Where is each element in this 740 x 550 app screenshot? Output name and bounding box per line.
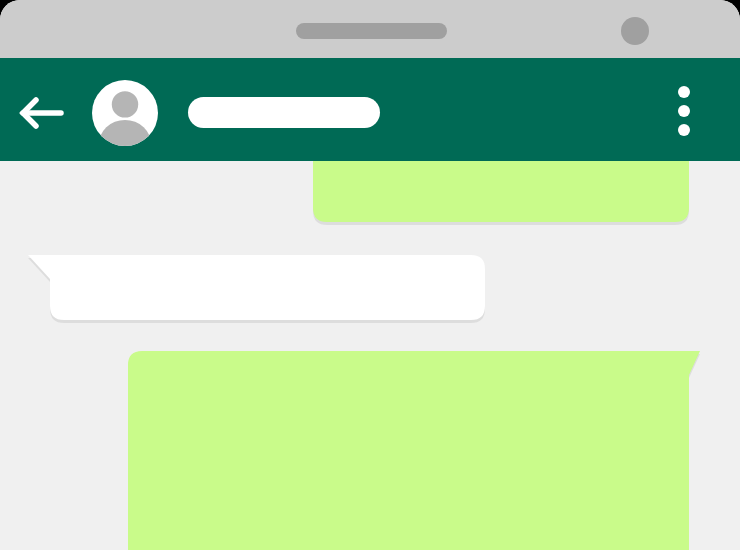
button[interactable]: Contact profile photo (92, 80, 158, 146)
button[interactable]: Contact name (170, 85, 390, 141)
button[interactable]: Received message (28, 255, 485, 320)
button[interactable]: Sent message (128, 351, 700, 550)
button[interactable]: Sent message (313, 165, 700, 222)
button[interactable]: More options (656, 85, 712, 141)
button[interactable]: Back (14, 85, 70, 141)
